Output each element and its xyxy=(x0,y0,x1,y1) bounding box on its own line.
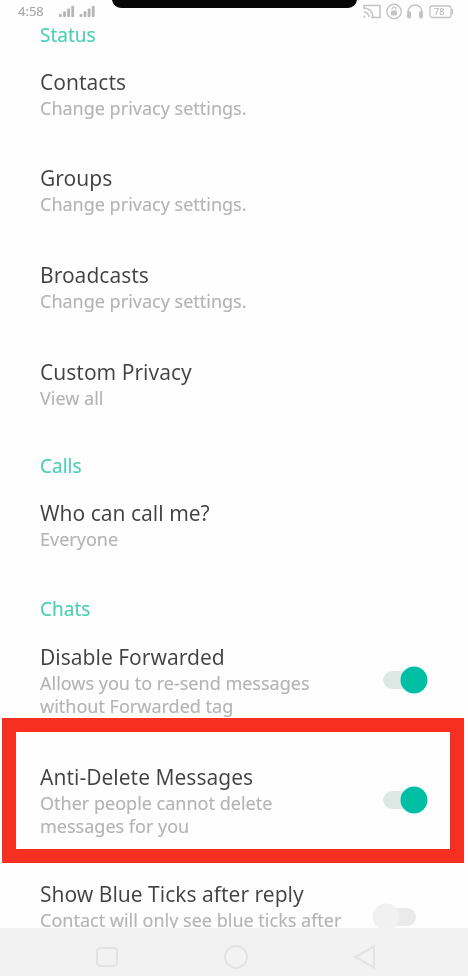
staticText: Chats xyxy=(40,596,91,622)
button[interactable]: Switch on xyxy=(380,784,432,816)
staticText: Show Blue Ticks after reply xyxy=(40,880,304,909)
button[interactable]: Recent apps xyxy=(82,933,132,976)
button[interactable]: Custom Privacy xyxy=(0,344,468,429)
staticText: Disable Forwarded xyxy=(40,643,225,672)
button[interactable]: Chats xyxy=(0,582,468,622)
button[interactable]: Back xyxy=(340,933,390,976)
button[interactable]: Status xyxy=(0,8,468,38)
staticText: Custom Privacy xyxy=(40,358,192,387)
button[interactable]: Disable Forwarded xyxy=(0,629,468,723)
button[interactable]: Home xyxy=(211,933,261,976)
staticText: 4:58 xyxy=(18,2,44,20)
button[interactable]: Show Blue Ticks after reply xyxy=(0,866,468,908)
button[interactable]: Who can call me? xyxy=(0,485,468,573)
staticText: Groups xyxy=(40,164,113,193)
staticText: Allows you to re-send messages without F… xyxy=(40,671,330,718)
staticText: Everyone xyxy=(40,527,119,552)
staticText: Anti-Delete Messages xyxy=(40,763,254,792)
staticText: Broadcasts xyxy=(40,261,149,290)
staticText: Other people cannot delete messages for … xyxy=(40,791,290,838)
staticText: Contacts xyxy=(40,68,127,97)
staticText: 78 xyxy=(434,5,445,17)
button[interactable]: Switch on xyxy=(380,664,432,696)
button[interactable]: Groups xyxy=(0,150,468,240)
button[interactable]: Calls xyxy=(0,439,468,479)
button[interactable]: Broadcasts xyxy=(0,247,468,337)
staticText: View all xyxy=(40,386,104,411)
staticText: Change privacy settings. xyxy=(40,289,247,314)
staticText: Change privacy settings. xyxy=(40,192,247,217)
staticText: Contact will only see blue ticks after xyxy=(40,908,342,933)
staticText: Who can call me? xyxy=(40,499,210,528)
button[interactable]: Switch off xyxy=(380,901,432,933)
button[interactable]: Anti-Delete Messages xyxy=(0,749,468,843)
staticText: Calls xyxy=(40,453,82,479)
button[interactable]: Contacts xyxy=(0,54,468,144)
staticText: Status xyxy=(40,22,96,48)
staticText: Change privacy settings. xyxy=(40,96,247,121)
